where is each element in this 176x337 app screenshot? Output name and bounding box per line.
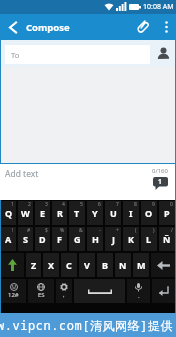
button[interactable]: C xyxy=(61,253,77,277)
staticText: . xyxy=(138,292,140,300)
button[interactable]: R xyxy=(52,201,67,225)
staticText: F xyxy=(57,233,62,245)
staticText: T xyxy=(74,207,80,219)
staticText: G xyxy=(74,233,81,245)
staticText: ! xyxy=(12,227,14,234)
staticText: 12# xyxy=(8,291,19,299)
staticText: W xyxy=(21,207,30,219)
staticText: 2 xyxy=(28,201,31,208)
staticText: ES xyxy=(38,291,45,299)
staticText: V xyxy=(84,259,90,271)
staticText: ) xyxy=(153,227,155,234)
staticText: K xyxy=(128,233,134,245)
staticText: Add text xyxy=(5,168,39,180)
button[interactable]: ES xyxy=(28,279,54,303)
staticText: % xyxy=(60,227,65,234)
staticText: 9 xyxy=(152,201,155,208)
button[interactable]: L xyxy=(141,227,157,251)
button[interactable]: O xyxy=(141,201,157,225)
button[interactable]: Q xyxy=(1,201,16,225)
button[interactable]: Y xyxy=(87,201,103,225)
button[interactable] xyxy=(1,253,24,277)
button[interactable]: J xyxy=(105,227,121,251)
staticText: & xyxy=(79,227,83,234)
button[interactable]: K xyxy=(123,227,139,251)
button[interactable]: 1 xyxy=(152,177,168,191)
staticText: , xyxy=(63,291,65,299)
button[interactable]: X xyxy=(43,253,59,277)
button[interactable]: S xyxy=(18,227,33,251)
staticText: - xyxy=(99,227,101,234)
staticText: J xyxy=(112,233,115,245)
staticText: 8 xyxy=(134,201,137,208)
staticText: Z xyxy=(31,259,37,271)
button[interactable]: B xyxy=(97,253,113,277)
staticText: Y xyxy=(92,207,98,219)
staticText: 6 xyxy=(98,201,101,208)
staticText: M xyxy=(137,259,146,271)
button[interactable] xyxy=(150,40,176,67)
staticText: B xyxy=(102,259,108,271)
staticText: / xyxy=(171,227,173,234)
button[interactable] xyxy=(151,253,175,277)
staticText: S xyxy=(23,233,28,245)
staticText: U xyxy=(110,207,117,219)
button[interactable]: E xyxy=(35,201,50,225)
button[interactable]: W xyxy=(18,201,33,225)
staticText: D xyxy=(39,233,46,245)
staticText: 10:08 AM xyxy=(143,2,174,12)
staticText: 4 xyxy=(62,201,65,208)
button[interactable]: T xyxy=(69,201,85,225)
staticText: X xyxy=(48,259,55,271)
button[interactable]: I xyxy=(123,201,139,225)
staticText: L xyxy=(146,233,152,245)
button[interactable]: . xyxy=(127,279,150,303)
staticText: O xyxy=(145,207,153,219)
staticText: Ñ xyxy=(163,233,171,245)
staticText: E xyxy=(40,207,46,219)
staticText: C xyxy=(66,259,72,271)
button[interactable]: H xyxy=(87,227,103,251)
staticText: N xyxy=(119,259,127,271)
staticText: 5 xyxy=(80,201,83,208)
staticText: 0/160 xyxy=(152,167,168,175)
staticText: 1 xyxy=(158,177,162,186)
button[interactable]: N xyxy=(115,253,131,277)
button[interactable]: Z xyxy=(26,253,41,277)
staticText: ( xyxy=(135,227,137,234)
button[interactable]: 12# xyxy=(1,279,26,303)
button[interactable]: , xyxy=(56,279,72,303)
button[interactable]: V xyxy=(79,253,95,277)
button[interactable] xyxy=(156,14,176,40)
button[interactable] xyxy=(152,279,175,303)
staticText: 7 xyxy=(116,201,119,208)
button[interactable]: G xyxy=(69,227,85,251)
staticText: Q xyxy=(5,207,13,219)
staticText: Compose xyxy=(26,21,70,34)
staticText: To xyxy=(11,50,20,60)
staticText: R xyxy=(57,207,63,219)
staticText: 0 xyxy=(170,201,173,208)
staticText: # xyxy=(27,227,31,234)
button[interactable]: Ñ xyxy=(159,227,175,251)
button[interactable]: P xyxy=(159,201,175,225)
button[interactable]: A xyxy=(1,227,16,251)
staticText: I xyxy=(129,207,133,219)
staticText: P xyxy=(164,207,170,219)
staticText: $ xyxy=(45,227,48,234)
staticText: + xyxy=(116,227,119,234)
button[interactable] xyxy=(6,20,20,34)
button[interactable]: F xyxy=(52,227,67,251)
staticText: 3 xyxy=(45,201,48,208)
button[interactable]: M xyxy=(133,253,149,277)
staticText: 1 xyxy=(11,201,14,208)
button[interactable]: To xyxy=(5,45,150,64)
button[interactable] xyxy=(74,279,125,303)
button[interactable]: D xyxy=(35,227,50,251)
staticText: H xyxy=(92,233,99,245)
staticText: A xyxy=(5,233,12,245)
button[interactable] xyxy=(130,14,156,40)
staticText: w.vipcn.com[清风网络]提供 xyxy=(0,317,173,333)
button[interactable]: U xyxy=(105,201,121,225)
